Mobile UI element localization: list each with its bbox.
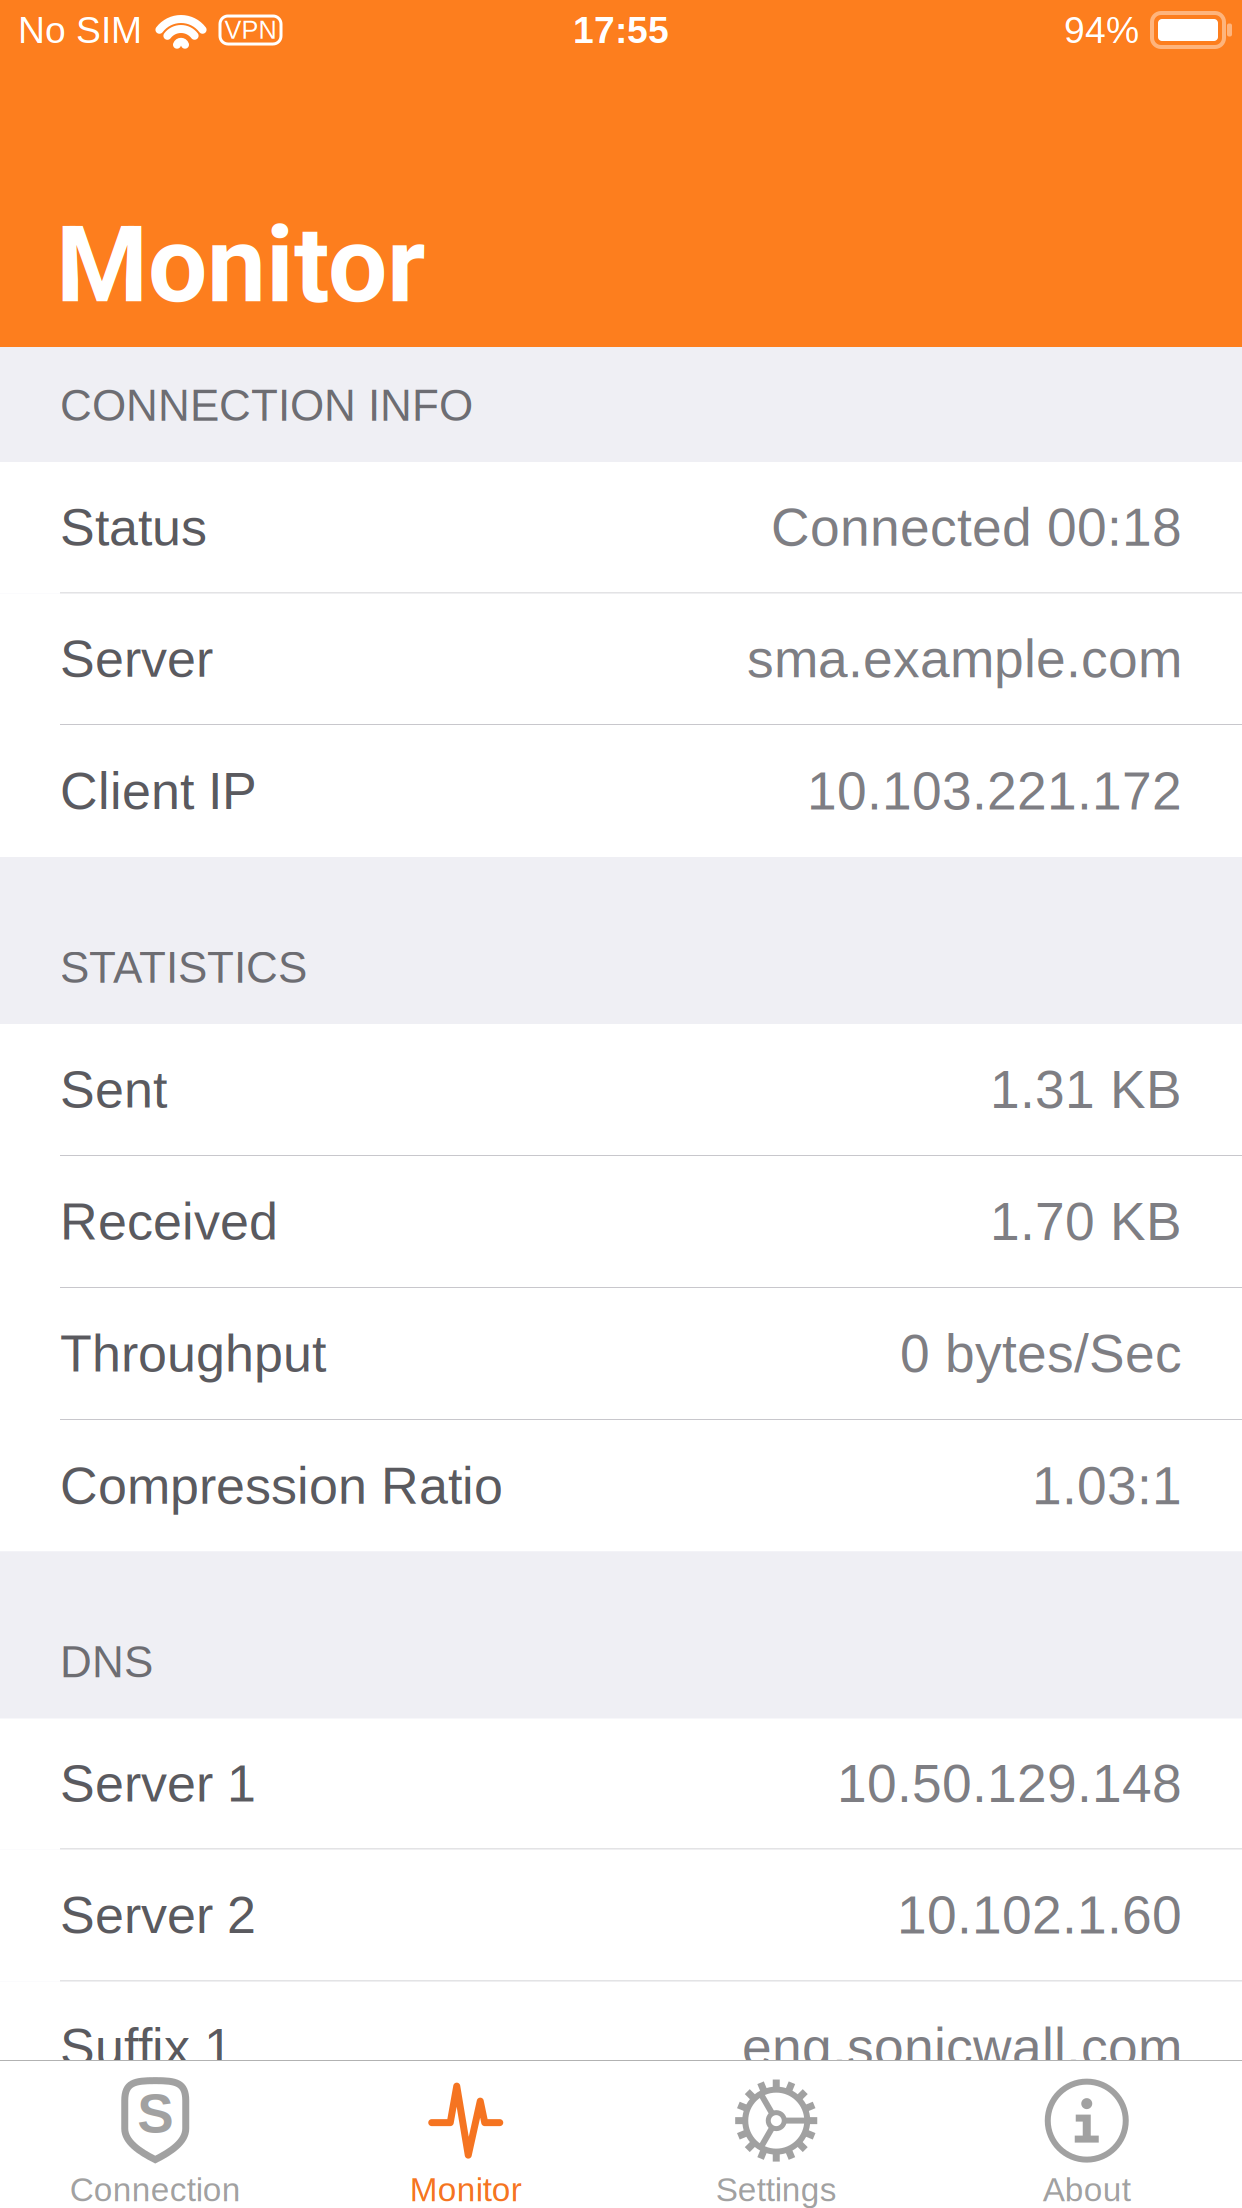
staticText: 17:55 (573, 9, 669, 51)
button[interactable]: Server 1 (0, 1718, 1242, 1849)
staticText: 10.50.129.148 (837, 1754, 1182, 1813)
staticText: 1.31 KB (990, 1060, 1182, 1119)
staticText: 1.03:1 (1032, 1456, 1182, 1516)
button[interactable]: Monitor (310, 2061, 621, 2208)
staticText: CONNECTION INFO (60, 381, 473, 430)
staticText: Monitor (410, 2171, 522, 2208)
staticText: VPN (224, 16, 276, 44)
staticText: Sent (60, 1060, 167, 1119)
staticText: 0 bytes/Sec (900, 1324, 1182, 1383)
staticText: Monitor (56, 204, 426, 327)
button[interactable]: Throughput (0, 1288, 1242, 1420)
button[interactable]: Compression Ratio (0, 1420, 1242, 1551)
staticText: 94% (1064, 9, 1139, 51)
button[interactable]: About (931, 2061, 1242, 2208)
staticText: Server 2 (60, 1886, 256, 1944)
staticText: eng.sonicwall.com (742, 2017, 1182, 2077)
staticText: Status (60, 498, 207, 556)
button[interactable]: S (0, 2061, 310, 2208)
staticText: No SIM (18, 9, 142, 51)
staticText: Received (60, 1192, 278, 1251)
staticText: 10.103.221.172 (807, 761, 1182, 821)
staticText: Client IP (60, 762, 257, 820)
staticText: 1.70 KB (990, 1192, 1182, 1251)
staticText: sma.example.com (747, 629, 1182, 689)
staticText: STATISTICS (60, 943, 307, 992)
button[interactable]: Settings (621, 2061, 931, 2208)
staticText: 10.102.1.60 (897, 1885, 1182, 1945)
staticText: Server 1 (60, 1754, 256, 1813)
staticText: S (137, 2083, 173, 2144)
button[interactable]: Sent (0, 1024, 1242, 1156)
staticText: Connection (70, 2171, 241, 2208)
button[interactable]: Server 2 (0, 1849, 1242, 1981)
button[interactable]: Status (0, 462, 1242, 593)
staticText: Compression Ratio (60, 1457, 503, 1515)
button[interactable]: Client IP (0, 725, 1242, 857)
staticText: Connected 00:18 (771, 497, 1182, 557)
staticText: Settings (716, 2171, 837, 2208)
staticText: Server (60, 630, 213, 688)
staticText: Suffix 1 (60, 2018, 233, 2076)
button[interactable]: Suffix 1 (0, 1981, 1242, 2113)
staticText: About (1043, 2171, 1131, 2208)
staticText: DNS (60, 1637, 153, 1686)
button[interactable]: Received (0, 1156, 1242, 1288)
staticText: Throughput (60, 1324, 326, 1383)
button[interactable]: Server (0, 593, 1242, 725)
